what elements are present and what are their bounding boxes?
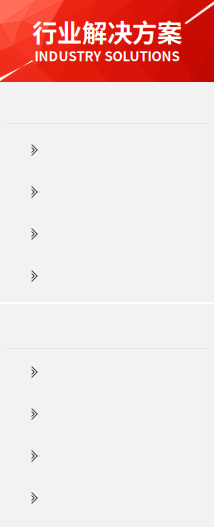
button[interactable]: 数据中心 [0,393,214,435]
button[interactable]: 医疗健康 [0,255,214,297]
button[interactable]: 金融服务 [0,171,214,213]
staticText: INDUSTRY SOLUTIONS [34,46,179,65]
button[interactable]: 制造与工业 [0,213,214,255]
button[interactable]: 政府与公共事业 [0,129,214,171]
button[interactable]: 安全合规 [0,477,214,519]
button[interactable]: 企业上云 [0,435,214,477]
staticText: 行业解决方案 [32,13,182,50]
button[interactable]: 智慧园区 [0,351,214,393]
